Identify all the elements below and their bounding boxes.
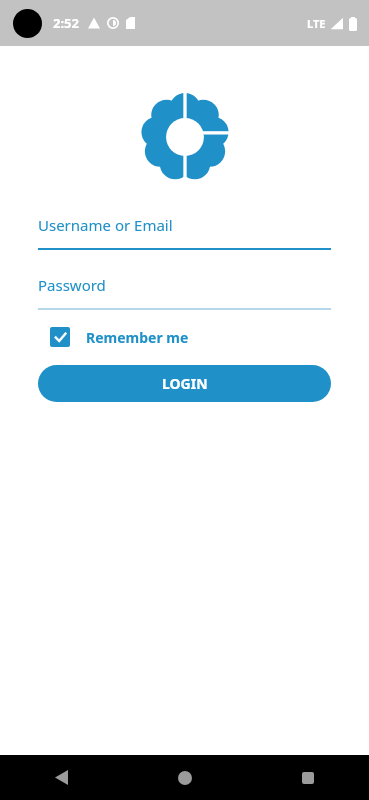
button[interactable]: Home	[123, 755, 246, 800]
staticText: Username or Email	[38, 215, 173, 235]
staticText: 2:52	[53, 14, 79, 32]
button[interactable]: Username or Email	[38, 215, 331, 250]
button[interactable]: Password	[38, 275, 331, 310]
staticText: LOGIN	[162, 374, 208, 393]
staticText: LTE	[307, 16, 326, 31]
staticText: Password	[38, 275, 106, 295]
button[interactable]: LOGIN	[38, 365, 331, 402]
button[interactable]: Recent apps	[246, 755, 369, 800]
button[interactable]: Back	[0, 755, 123, 800]
button[interactable]: Remember me	[44, 322, 195, 352]
staticText: Remember me	[86, 328, 189, 347]
